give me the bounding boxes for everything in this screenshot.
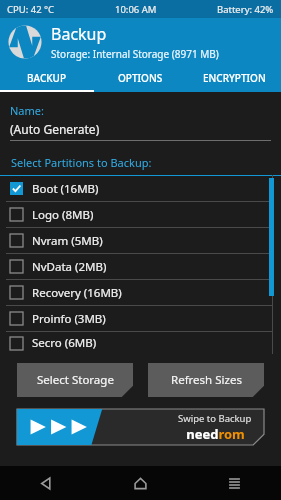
staticText: Secro (6MB) [32,335,97,351]
button[interactable]: Secro (6MB) [0,332,281,354]
staticText: Select Storage [37,372,114,388]
button[interactable]: Recent apps [187,466,281,500]
staticText: needrom [186,425,245,443]
staticText: NvData (2MB) [32,259,107,275]
staticText: Proinfo (3MB) [32,311,106,327]
button[interactable]: Back [0,466,93,500]
button[interactable]: Recovery (16MB) [0,280,281,305]
staticText: Select Partitions to Backup: [11,155,152,170]
staticText: Battery: 42% [217,3,274,16]
button[interactable]: ENCRYPTION [187,66,281,90]
staticText: OPTIONS [118,71,163,85]
staticText: Name: [10,103,44,118]
button[interactable]: Home [93,466,187,500]
staticText: Refresh Sizes [171,372,242,388]
staticText: Boot (16MB) [32,181,99,197]
staticText: BACKUP [27,71,67,85]
staticText: Storage: Internal Storage (8971 MB) [51,47,219,61]
button[interactable]: Select Storage [17,363,133,397]
staticText: Nvram (5MB) [32,233,103,249]
staticText: Recovery (16MB) [32,285,122,301]
staticText: (Auto Generate) [10,121,100,137]
staticText: Logo (8MB) [32,207,94,223]
staticText: Backup [51,23,107,45]
button[interactable]: (Auto Generate) [10,121,271,141]
button[interactable]: OPTIONS [93,66,187,90]
button[interactable]: Boot (16MB) [0,176,281,201]
staticText: Swipe to Backup [178,412,252,425]
button[interactable]: Swipe to Backup [17,409,264,445]
staticText: ENCRYPTION [203,71,266,85]
button[interactable]: BACKUP [0,66,93,90]
button[interactable]: Nvram (5MB) [0,228,281,253]
staticText: 10:06 AM [115,3,157,16]
staticText: CPU: 42 °C [7,3,55,16]
button[interactable]: NvData (2MB) [0,254,281,279]
button[interactable]: Proinfo (3MB) [0,306,281,331]
button[interactable]: Refresh Sizes [148,363,264,397]
button[interactable]: Logo (8MB) [0,202,281,227]
